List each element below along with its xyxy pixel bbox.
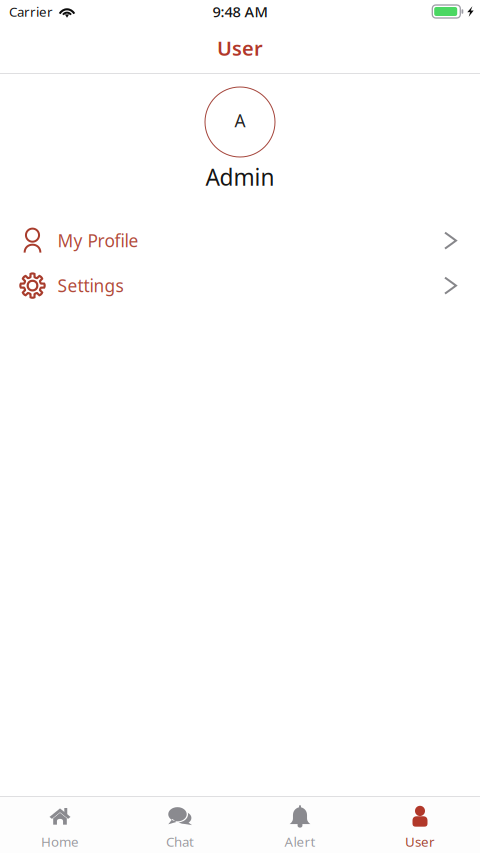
staticText: Home [41,833,79,850]
staticText: Alert [284,833,315,850]
staticText: User [217,35,263,61]
staticText: A [234,109,245,132]
button[interactable]: User [360,795,480,853]
button[interactable]: Settings [0,263,480,308]
staticText: Admin [205,162,274,192]
staticText: My Profile [57,229,138,252]
staticText: Settings [57,274,123,297]
button[interactable]: Chat [120,795,240,853]
staticText: User [405,833,435,850]
staticText: Chat [166,833,194,850]
staticText: 9:48 AM [212,2,267,21]
button[interactable]: My Profile [0,218,480,263]
button[interactable]: Alert [240,795,360,853]
staticText: Carrier [9,3,53,20]
button[interactable]: Home [0,795,120,853]
